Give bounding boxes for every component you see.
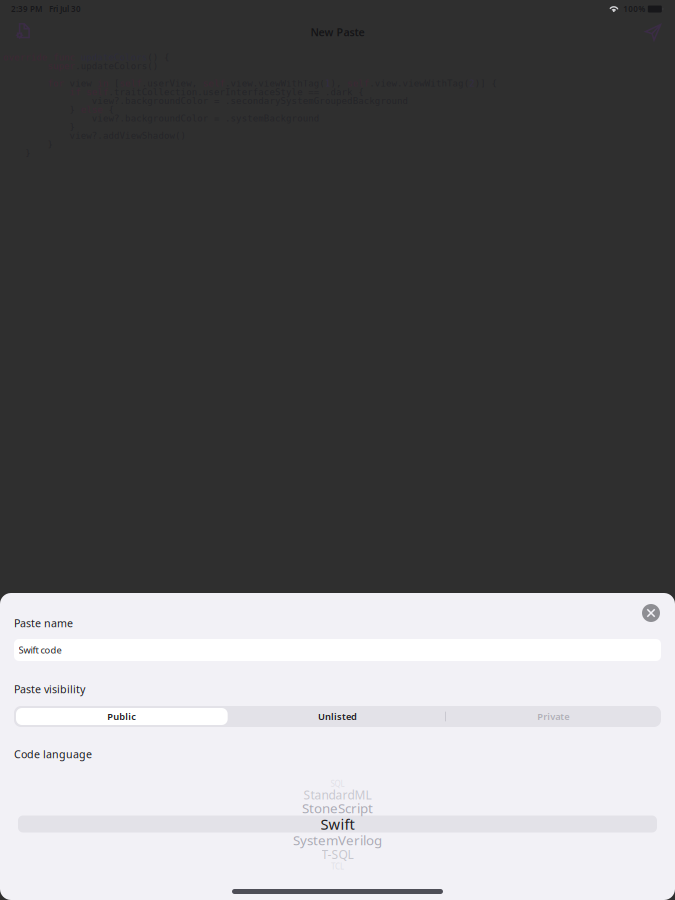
button[interactable]: Swift code [14, 639, 661, 661]
staticText: SystemVerilog [293, 831, 382, 849]
staticText: Paste visibility [14, 682, 85, 696]
staticText: New Paste [310, 25, 364, 39]
button[interactable]: StandardML [0, 789, 675, 800]
button[interactable]: Public [14, 706, 230, 727]
button[interactable]: Private [445, 706, 661, 727]
staticText: Unlisted [318, 710, 357, 723]
staticText: Code language [14, 747, 92, 761]
staticText: SQL [330, 778, 344, 789]
staticText: TCL [331, 861, 344, 872]
staticText: StandardML [303, 787, 371, 803]
staticText: func [3, 52, 75, 63]
button[interactable]: Unlisted [230, 706, 445, 727]
button[interactable]: StoneScript [0, 800, 675, 815]
staticText: override [3, 52, 47, 63]
staticText: StoneScript [302, 799, 373, 817]
staticText: 2:39 PM [11, 4, 42, 14]
staticText: Paste name [14, 616, 73, 630]
button[interactable]: T-SQL [0, 847, 675, 861]
staticText: Public [107, 710, 136, 723]
staticText: T-SQL [321, 846, 353, 862]
button[interactable]: Swift [0, 815, 675, 832]
button[interactable]: Close [637, 599, 665, 627]
staticText: 100% [623, 4, 645, 14]
staticText: Fri Jul 30 [49, 4, 81, 14]
staticText: Swift code [18, 644, 61, 656]
button[interactable]: Document options [5, 18, 39, 46]
staticText: Swift [320, 814, 354, 834]
staticText: Private [537, 710, 569, 723]
button[interactable]: SystemVerilog [0, 832, 675, 847]
button[interactable]: Send paste [636, 18, 670, 46]
